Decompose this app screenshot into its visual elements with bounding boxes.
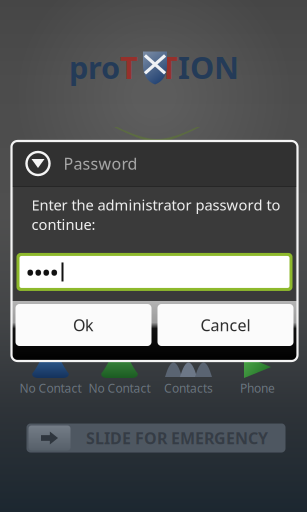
staticText: SLIDE FOR EMERGENCY [86,427,268,449]
staticText: No Contact [19,380,81,396]
button[interactable]: No Contact [16,357,85,395]
staticText: ION [178,47,239,87]
staticText: Password [63,153,137,174]
button[interactable]: Cancel [157,304,293,346]
staticText: Cancel [200,314,250,336]
staticText: pro [69,47,120,87]
staticText: Contacts [164,380,213,396]
button[interactable]: Ok [15,304,151,346]
staticText: Ok [73,314,94,336]
button[interactable]: Contacts [154,357,223,395]
staticText: T [160,47,178,87]
button[interactable]: SLIDE FOR EMERGENCY [26,423,285,452]
staticText: •••• [26,259,58,285]
staticText: T [120,47,138,87]
staticText: Phone [240,380,275,396]
button[interactable]: No Contact [85,357,154,395]
staticText: Enter the administrator password to cont… [31,195,280,234]
staticText: No Contact [88,380,150,396]
button[interactable]: Phone [223,357,292,395]
